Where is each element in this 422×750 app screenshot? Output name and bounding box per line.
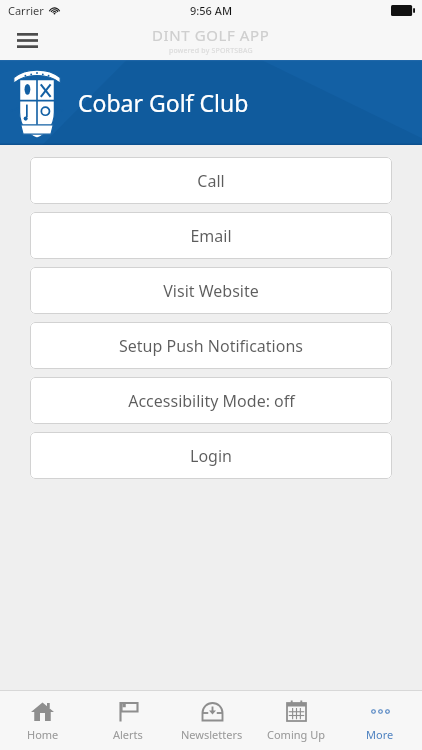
button[interactable]: Accessibility Mode: off <box>30 377 392 424</box>
button[interactable]: Newsletters <box>170 691 254 750</box>
button[interactable]: Alerts <box>85 691 170 750</box>
button[interactable]: More <box>338 691 422 750</box>
button[interactable]: Home <box>0 691 85 750</box>
button[interactable]: Menu <box>10 23 44 57</box>
staticText: Accessibility Mode: off <box>128 390 295 412</box>
staticText: Home <box>27 727 59 742</box>
staticText: Login <box>190 445 232 467</box>
button[interactable]: Login <box>30 432 392 479</box>
staticText: Alerts <box>113 727 143 742</box>
button[interactable]: Setup Push Notifications <box>30 322 392 369</box>
staticText: Call <box>197 170 225 192</box>
staticText: Setup Push Notifications <box>119 335 303 357</box>
button[interactable]: Call <box>30 157 392 204</box>
button[interactable]: Coming Up <box>254 691 338 750</box>
staticText: Email <box>190 225 232 247</box>
staticText: powered by SPORTSBAG <box>169 46 253 56</box>
staticText: DINT GOLF APP <box>152 25 270 45</box>
staticText: Newsletters <box>181 727 243 742</box>
staticText: Coming Up <box>267 727 325 742</box>
staticText: Carrier <box>8 3 44 18</box>
staticText: Cobar Golf Club <box>78 87 249 118</box>
button[interactable]: Visit Website <box>30 267 392 314</box>
button[interactable]: Email <box>30 212 392 259</box>
staticText: More <box>366 727 394 742</box>
staticText: Visit Website <box>163 280 259 302</box>
staticText: 9:56 AM <box>190 3 233 18</box>
